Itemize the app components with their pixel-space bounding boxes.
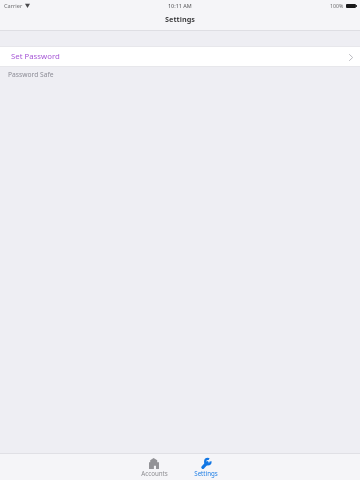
staticText: 100% — [330, 2, 344, 9]
staticText: Carrier — [4, 2, 23, 10]
button[interactable]: Set Password — [0, 47, 360, 66]
staticText: Password Safe — [8, 70, 54, 79]
staticText: 10:11 AM — [168, 2, 192, 9]
button[interactable]: Settings — [180, 454, 232, 480]
staticText: Set Password — [11, 51, 60, 62]
staticText: Settings — [165, 14, 195, 24]
staticText: Settings — [194, 469, 218, 477]
staticText: Accounts — [141, 469, 168, 477]
button[interactable]: Accounts — [128, 454, 180, 480]
